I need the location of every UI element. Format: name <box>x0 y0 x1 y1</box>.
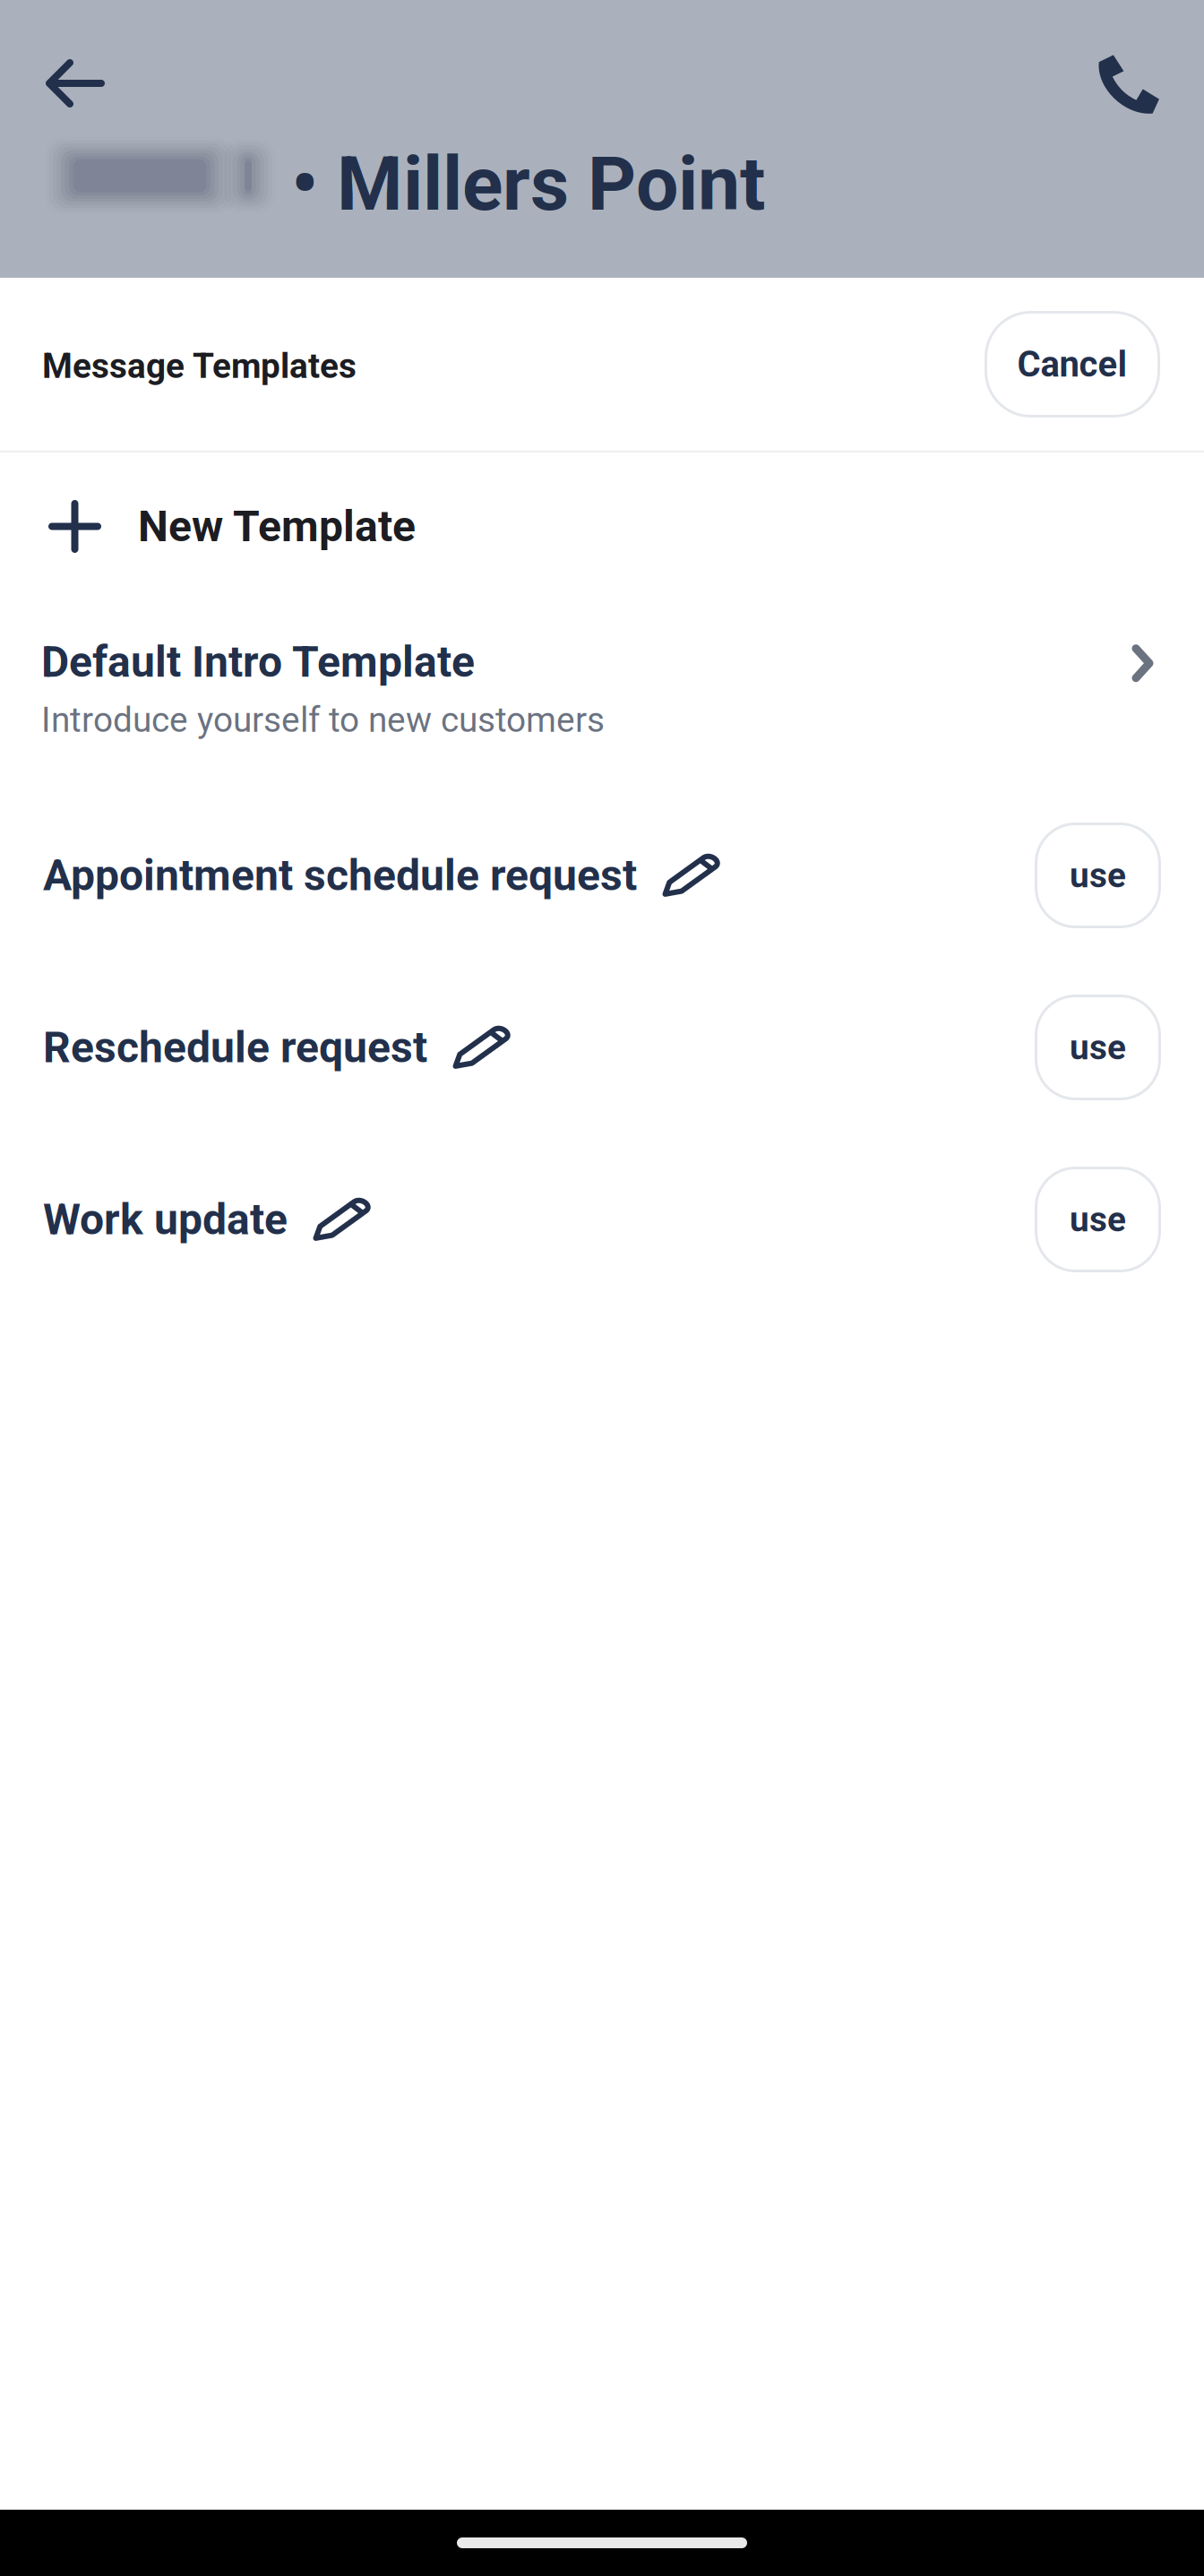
button[interactable]: Default Intro Template <box>0 600 1204 789</box>
staticText: Message Templates <box>42 346 357 386</box>
staticText: New Template <box>138 501 416 552</box>
staticText: use <box>1070 1027 1126 1068</box>
staticText: Cancel <box>1017 343 1127 385</box>
staticText: Work update <box>43 1194 288 1245</box>
staticText: Default Intro Template <box>41 637 475 687</box>
staticText: Introduce yourself to new customers <box>41 700 605 740</box>
staticText: Reschedule request <box>43 1022 427 1073</box>
staticText: • Millers Point <box>291 140 765 228</box>
button[interactable]: Reschedule request <box>0 961 1204 1133</box>
button[interactable]: Call <box>1071 0 1204 129</box>
button[interactable]: Back <box>0 7 128 122</box>
button[interactable]: Appointment schedule request <box>0 789 1204 961</box>
staticText: Appointment schedule request <box>43 850 637 901</box>
button[interactable]: Work update <box>0 1133 1204 1305</box>
staticText: use <box>1070 1199 1126 1240</box>
staticText: use <box>1070 855 1126 896</box>
button[interactable]: New Template <box>0 452 1204 600</box>
button[interactable]: Cancel <box>985 311 1160 418</box>
